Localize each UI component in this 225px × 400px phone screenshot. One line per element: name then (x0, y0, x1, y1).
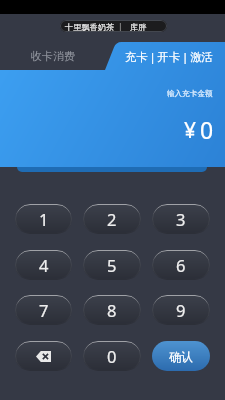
staticText: 8 (107, 299, 117, 321)
staticText: 充卡 | 开卡 | 激活 (125, 49, 213, 64)
button[interactable]: 收卡消费 (0, 42, 106, 70)
button[interactable]: 5 (83, 250, 141, 280)
staticText: 收卡消费 (31, 49, 75, 63)
button[interactable]: 确认 (152, 341, 210, 371)
staticText: 2 (107, 208, 117, 230)
staticText: 0 (107, 345, 117, 367)
staticText: ¥ (184, 116, 197, 145)
staticText: 确认 (169, 349, 193, 364)
staticText: 1 (39, 208, 49, 230)
staticText: 库胖 (130, 22, 147, 32)
staticText: 3 (176, 208, 186, 230)
staticText: 输入充卡金额 (167, 89, 213, 99)
button[interactable]: 十里飘香奶茶 (60, 20, 167, 32)
staticText: 9 (176, 299, 186, 321)
button[interactable]: 6 (152, 250, 210, 280)
button[interactable]: Delete (15, 341, 72, 371)
button[interactable]: 1 (15, 204, 72, 234)
button[interactable]: 0 (83, 341, 141, 371)
staticText: 0 (200, 114, 214, 145)
staticText: 4 (39, 254, 49, 276)
button[interactable]: 8 (83, 295, 141, 325)
button[interactable]: 4 (15, 250, 72, 280)
staticText: | (118, 21, 123, 32)
staticText: 十里飘香奶茶 (65, 22, 115, 32)
button[interactable]: 3 (152, 204, 210, 234)
staticText: 7 (39, 299, 49, 321)
button[interactable]: 2 (83, 204, 141, 234)
staticText: 5 (107, 254, 117, 276)
button[interactable]: 充卡 | 开卡 | 激活 (113, 42, 225, 70)
button[interactable]: 9 (152, 295, 210, 325)
button[interactable]: 7 (15, 295, 72, 325)
staticText: 6 (176, 254, 186, 276)
